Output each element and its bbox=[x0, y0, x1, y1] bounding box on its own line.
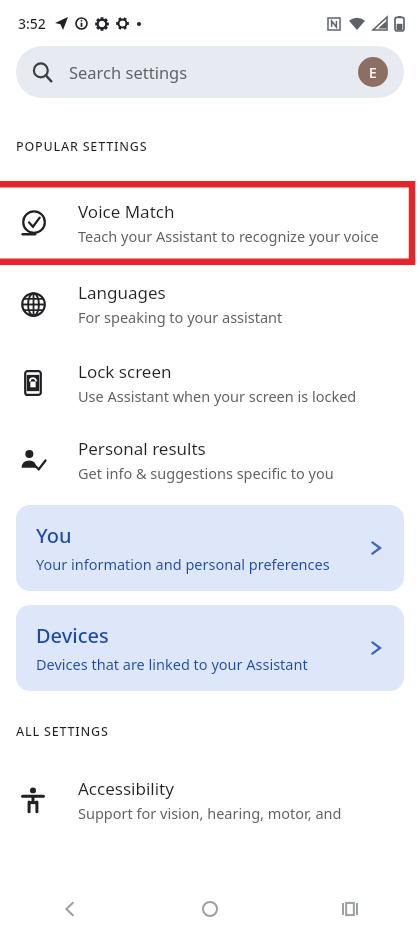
staticText: Devices bbox=[36, 622, 109, 649]
staticText: You bbox=[36, 522, 72, 549]
staticText: For speaking to your assistant bbox=[78, 307, 283, 327]
staticText: Languages bbox=[78, 281, 166, 304]
staticText: E bbox=[369, 63, 377, 82]
button[interactable]: Home bbox=[140, 885, 280, 933]
button[interactable]: Voice Match bbox=[0, 181, 420, 265]
staticText: Get info & suggestions specific to you bbox=[78, 463, 334, 483]
staticText: Support for vision, hearing, motor, and bbox=[78, 803, 342, 823]
button[interactable]: Recent apps bbox=[280, 885, 420, 933]
staticText: POPULAR SETTINGS bbox=[16, 138, 148, 155]
staticText: Search settings bbox=[69, 61, 188, 83]
staticText: Lock screen bbox=[78, 360, 172, 383]
button[interactable]: Lock screen bbox=[0, 343, 420, 423]
button[interactable]: Devices bbox=[16, 605, 404, 691]
staticText: Personal results bbox=[78, 437, 206, 460]
button[interactable]: Account bbox=[358, 57, 388, 87]
button[interactable]: Search settings bbox=[16, 46, 404, 98]
staticText: Accessibility bbox=[78, 777, 174, 800]
staticText: Voice Match bbox=[78, 200, 175, 223]
button[interactable]: Personal results bbox=[0, 423, 420, 497]
button[interactable]: Languages bbox=[0, 265, 420, 343]
staticText: Devices that are linked to your Assistan… bbox=[36, 654, 308, 674]
button[interactable]: You bbox=[16, 505, 404, 591]
staticText: Use Assistant when your screen is locked bbox=[78, 386, 357, 406]
button[interactable]: Accessibility bbox=[0, 768, 420, 832]
staticText: ALL SETTINGS bbox=[16, 723, 109, 740]
staticText: Teach your Assistant to recognize your v… bbox=[78, 226, 379, 246]
staticText: Your information and personal preference… bbox=[36, 554, 330, 574]
staticText: 3:52 bbox=[18, 14, 46, 33]
button[interactable]: Back bbox=[0, 885, 140, 933]
